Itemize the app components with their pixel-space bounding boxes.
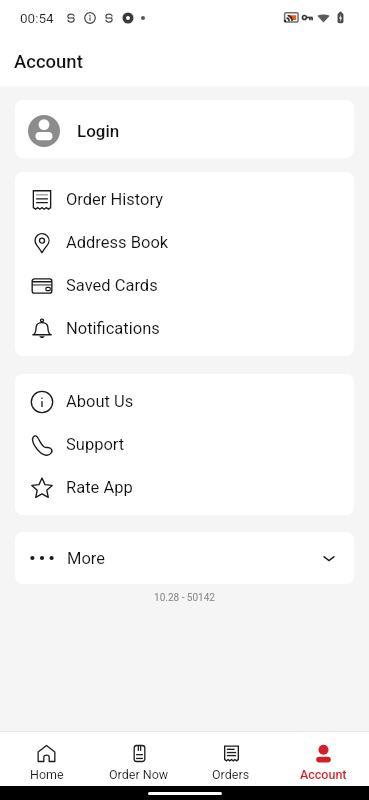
- staticText: Login: [77, 121, 120, 141]
- staticText: Support: [66, 435, 125, 454]
- button[interactable]: Home: [0, 732, 93, 786]
- button[interactable]: Order Now: [93, 732, 185, 786]
- button[interactable]: More: [15, 532, 354, 584]
- staticText: Order Now: [109, 767, 169, 782]
- button[interactable]: Orders: [185, 732, 277, 786]
- staticText: Rate App: [66, 478, 133, 497]
- staticText: 00:54: [20, 10, 54, 26]
- button[interactable]: Address Book: [15, 221, 354, 264]
- button[interactable]: About Us: [15, 380, 354, 423]
- staticText: Account: [300, 767, 347, 782]
- staticText: Saved Cards: [66, 276, 158, 295]
- staticText: Notifications: [66, 319, 160, 338]
- staticText: Orders: [212, 767, 250, 782]
- button[interactable]: Support: [15, 423, 354, 466]
- button[interactable]: Order History: [15, 178, 354, 221]
- staticText: 10.28 - 50142: [0, 592, 369, 604]
- staticText: Address Book: [66, 233, 169, 252]
- staticText: About Us: [66, 392, 134, 411]
- staticText: Account: [14, 51, 83, 73]
- button[interactable]: Saved Cards: [15, 264, 354, 307]
- staticText: Order History: [66, 190, 164, 209]
- button[interactable]: Notifications: [15, 307, 354, 350]
- staticText: Home: [30, 767, 64, 782]
- button[interactable]: Rate App: [15, 466, 354, 509]
- button[interactable]: Account: [277, 732, 369, 786]
- staticText: More: [67, 549, 106, 568]
- button[interactable]: Login: [15, 100, 354, 158]
- other: Expand more: [321, 550, 337, 566]
